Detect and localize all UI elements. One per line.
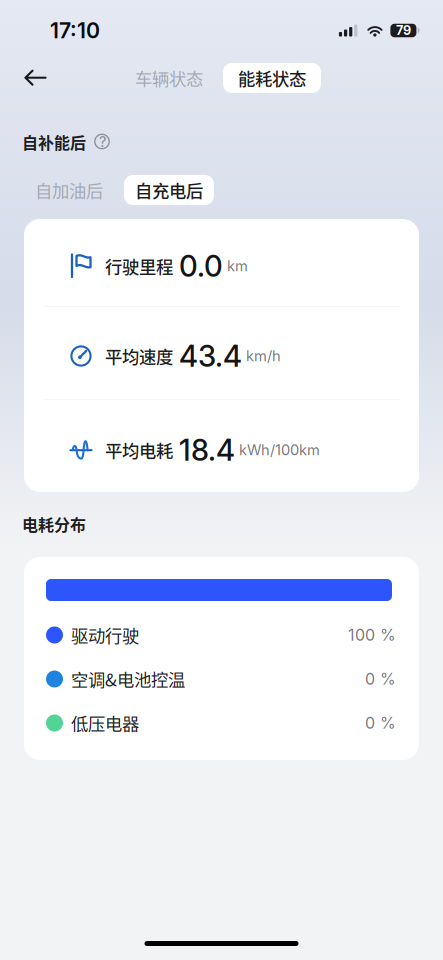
staticText: 平均速度	[105, 343, 173, 369]
staticText: 空调&电池控温	[71, 666, 185, 692]
button[interactable]: 自加油后	[24, 175, 124, 205]
staticText: 自充电后	[135, 177, 203, 203]
staticText: 自加油后	[35, 177, 103, 203]
staticText: 0 %	[365, 713, 396, 733]
button[interactable]: 能耗状态	[223, 63, 321, 93]
staticText: ?	[99, 133, 106, 150]
button[interactable]: Help	[94, 133, 111, 150]
staticText: 79	[396, 23, 411, 38]
staticText: 电耗分布	[22, 512, 86, 536]
staticText: 0.0	[179, 248, 223, 284]
staticText: kWh/100km	[239, 441, 320, 459]
staticText: 18.4	[179, 432, 235, 468]
staticText: 43.4	[179, 338, 242, 374]
staticText: 自补能后	[22, 130, 86, 154]
staticText: 行驶里程	[105, 253, 173, 279]
button[interactable]: Back	[13, 58, 58, 97]
staticText: km/h	[246, 347, 281, 365]
staticText: 低压电器	[71, 710, 139, 736]
staticText: 能耗状态	[238, 65, 306, 91]
staticText: 驱动行驶	[71, 622, 139, 648]
staticText: 100 %	[348, 625, 396, 645]
staticText: km	[227, 257, 248, 275]
staticText: 平均电耗	[105, 437, 173, 463]
staticText: 0 %	[365, 669, 396, 689]
button[interactable]: 自充电后	[124, 175, 214, 205]
staticText: 车辆状态	[135, 65, 203, 91]
button[interactable]: 车辆状态	[135, 63, 223, 93]
staticText: 17:10	[50, 18, 100, 43]
